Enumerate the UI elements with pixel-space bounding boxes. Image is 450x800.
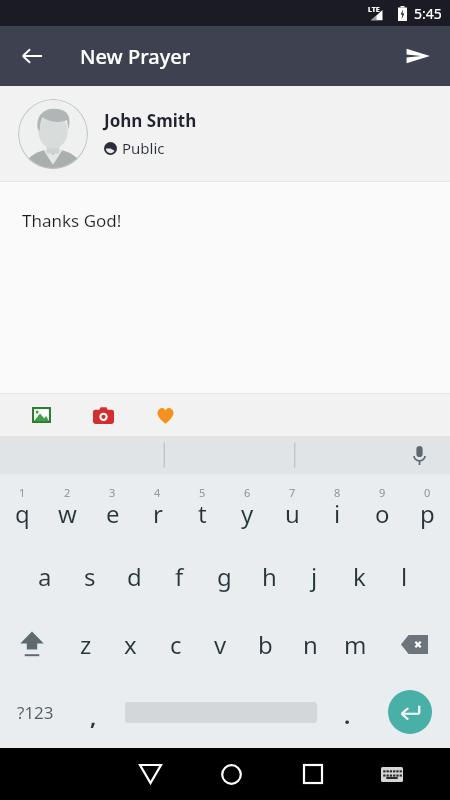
button[interactable]: b [243,610,288,678]
staticText: w [58,497,77,530]
button[interactable]: 0 [405,474,450,542]
button[interactable]: Space [116,678,325,746]
staticText: v [214,628,227,661]
staticText: LTE [368,5,380,15]
staticText: 7 [289,485,296,500]
staticText: a [38,560,52,593]
staticText: 9 [379,485,386,500]
staticText: m [344,628,367,661]
staticText: 5:45 [414,4,442,23]
staticText: y [241,497,254,530]
button[interactable]: 6 [225,474,270,542]
staticText: 1 [19,485,26,500]
button[interactable]: 9 [360,474,405,542]
button[interactable]: g [202,542,247,610]
button[interactable]: v [198,610,243,678]
button[interactable]: Back [8,32,56,80]
staticText: Thanks God! [22,209,122,232]
button[interactable]: Voice input [402,438,436,472]
staticText: John Smith [104,109,197,132]
staticText: r [153,497,163,530]
button[interactable]: Switch keyboard [353,748,430,800]
staticText: b [258,628,273,661]
staticText: 5 [199,485,206,500]
button[interactable]: Recent apps [272,748,353,800]
staticText: 8 [334,485,341,500]
staticText: New Prayer [80,43,191,70]
button[interactable]: z [63,610,108,678]
button[interactable]: 1 [0,474,45,542]
button[interactable]: . [325,678,370,746]
staticText: t [198,497,207,530]
staticText: u [285,497,300,530]
staticText: Public [122,138,165,158]
staticText: f [175,560,184,593]
button[interactable]: Back [110,748,191,800]
button[interactable]: d [112,542,157,610]
button[interactable]: k [337,542,382,610]
staticText: 2 [64,485,71,500]
staticText: i [334,497,341,530]
staticText: 6 [244,485,251,500]
button[interactable]: John Smith [0,86,450,181]
button[interactable]: h [247,542,292,610]
staticText: ?123 [17,701,54,724]
staticText: 4 [154,485,161,500]
staticText: , [90,701,97,731]
staticText: l [401,560,408,593]
staticText: e [106,497,120,530]
button[interactable]: 4 [135,474,180,542]
staticText: x [124,628,137,661]
staticText: 3 [109,485,116,500]
button[interactable]: c [153,610,198,678]
button[interactable]: n [288,610,333,678]
staticText: d [127,560,142,593]
staticText: q [15,497,30,530]
staticText: . [344,700,351,730]
button[interactable]: s [67,542,112,610]
button[interactable]: 7 [270,474,315,542]
button[interactable]: Home [191,748,272,800]
button[interactable]: Like [150,400,180,430]
button[interactable]: a [22,542,67,610]
button[interactable]: j [292,542,337,610]
button[interactable]: m [333,610,378,678]
button[interactable]: f [157,542,202,610]
staticText: 0 [424,485,431,500]
staticText: p [420,497,435,530]
button[interactable]: x [108,610,153,678]
button[interactable]: Send [394,32,442,80]
staticText: z [80,628,92,661]
staticText: n [303,628,318,661]
button[interactable]: 2 [45,474,90,542]
button[interactable]: Shift [0,610,63,678]
staticText: j [311,560,318,593]
staticText: k [353,560,366,593]
button[interactable]: Add image [26,400,56,430]
button[interactable]: , [71,678,116,746]
staticText: c [170,628,182,661]
button[interactable]: 5 [180,474,225,542]
button[interactable]: l [382,542,427,610]
staticText: h [262,560,277,593]
staticText: g [217,560,232,593]
button[interactable]: Take photo [88,400,118,430]
button[interactable]: ?123 [0,678,71,746]
staticText: o [375,497,390,530]
staticText: s [84,560,96,593]
button[interactable]: Enter [370,678,450,746]
button[interactable]: Backspace [378,610,450,678]
button[interactable]: 3 [90,474,135,542]
button[interactable]: 8 [315,474,360,542]
